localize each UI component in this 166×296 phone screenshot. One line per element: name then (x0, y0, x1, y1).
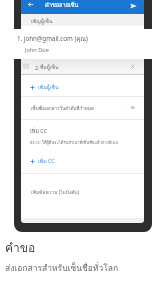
staticText: เพิ่มข้อความ (ไม่บังคับ) (31, 188, 80, 196)
staticText: คำขอลายเซ็น (45, 1, 79, 10)
staticText: 2. (35, 64, 40, 71)
button[interactable]: Send (129, 1, 138, 10)
button[interactable]: Sign in order toggle (125, 104, 135, 110)
staticText: ส่งเอกสารสำหรับเซ็นชื่อทั่วโลก (5, 261, 119, 275)
staticText: เพิ่ม CC (38, 157, 55, 165)
button[interactable]: Back (27, 1, 34, 8)
staticText: ชื่อผู้เซ็น (40, 63, 59, 71)
button[interactable]: 2. (21, 59, 144, 74)
staticText: เพิ่มผู้เซ็น (38, 83, 59, 91)
staticText: 1. john@gmail.com (คุณ) (17, 34, 88, 44)
button[interactable]: เซ็นชื่อเอกสารในลำดับที่กำหนด (21, 97, 144, 119)
staticText: เซ็นชื่อเอกสารในลำดับที่กำหนด (31, 105, 94, 112)
button[interactable]: เพิ่มข้อความ (ไม่บังคับ) (21, 173, 144, 197)
staticText: คำขอ (5, 238, 36, 257)
button[interactable]: เพิ่มผู้เซ็น (21, 81, 144, 93)
button[interactable]: เพิ่ม CC (21, 155, 144, 167)
staticText: เพิ่ม CC (30, 127, 48, 136)
staticText: เชิญผู้เซ็น (31, 17, 53, 25)
staticText: John Doe (25, 46, 49, 54)
staticText: ส่ง CC ให้ผู้อื่นจะได้รับสำเนาที่เซ็นชื่… (30, 139, 118, 146)
button[interactable]: 1. john@gmail.com (คุณ) (7, 29, 156, 59)
button[interactable]: Remove signer (128, 62, 137, 71)
